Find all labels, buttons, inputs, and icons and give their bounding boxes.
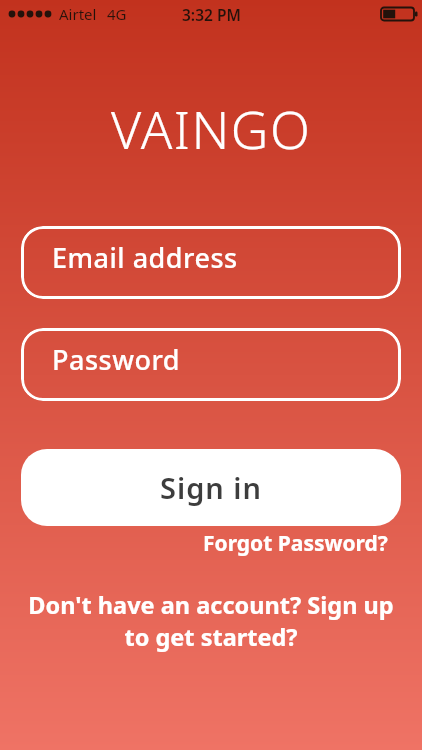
button[interactable]: Forgot Password? [203, 529, 388, 558]
button[interactable]: Sign in [21, 449, 401, 526]
staticText: Don't have an account? Sign up to get st… [28, 589, 394, 653]
staticText: Password [52, 341, 181, 378]
button[interactable]: Email address [21, 226, 401, 299]
staticText: Sign in [160, 468, 263, 507]
staticText: Forgot Password? [203, 529, 388, 558]
staticText: 4G [107, 4, 127, 24]
button[interactable]: Password [21, 328, 401, 401]
staticText: Airtel [59, 4, 97, 24]
staticText: Email address [52, 239, 238, 276]
staticText: VAINGO [111, 93, 312, 155]
button[interactable]: Don't have an account? Sign up to get st… [24, 589, 398, 653]
staticText: 3:32 PM [182, 4, 241, 25]
